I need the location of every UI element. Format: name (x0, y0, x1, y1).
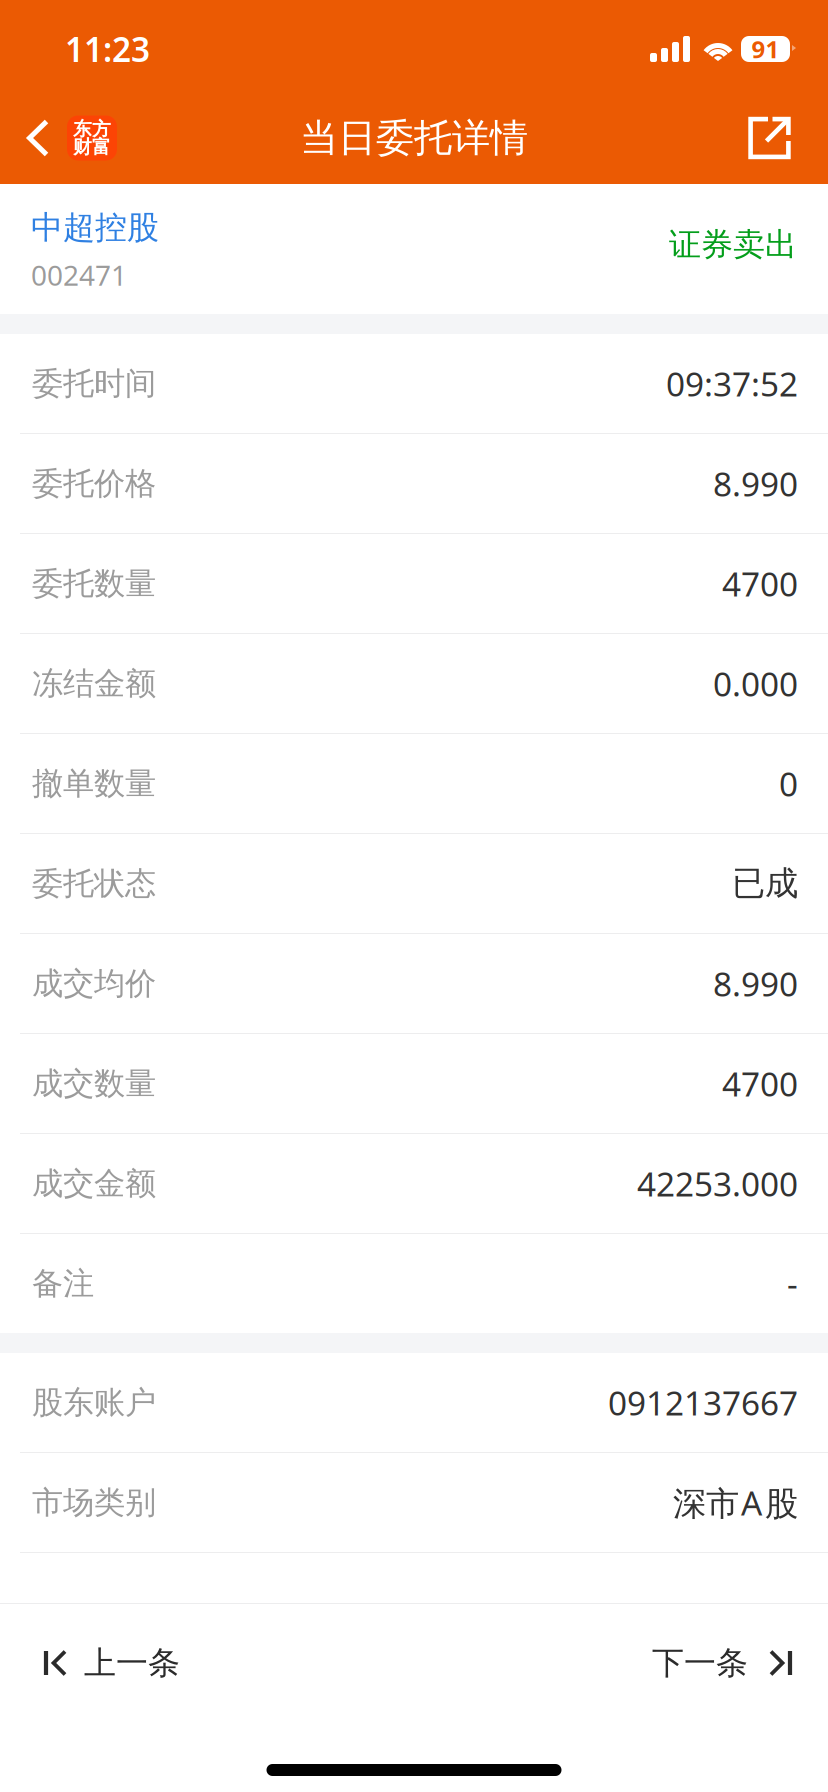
button[interactable]: 下一条 (622, 1608, 828, 1718)
staticText: 证券卖出 (669, 225, 797, 264)
staticText: 冻结金额 (32, 664, 156, 703)
staticText: 002471 (31, 256, 127, 293)
staticText: 上一条 (84, 1643, 180, 1683)
staticText: 中超控股 (31, 208, 159, 247)
staticText: 已成 (732, 863, 798, 904)
staticText: 0912137667 (608, 1380, 798, 1425)
staticText: 0.000 (713, 661, 798, 706)
staticText: 委托数量 (32, 564, 156, 603)
staticText: 股东账户 (32, 1383, 156, 1422)
staticText: 市场类别 (32, 1483, 156, 1522)
staticText: 下一条 (652, 1643, 748, 1683)
staticText: 11:23 (65, 27, 150, 71)
staticText: 0 (779, 761, 798, 806)
staticText: 成交均价 (32, 964, 156, 1003)
staticText: - (787, 1261, 798, 1306)
staticText: 42253.000 (637, 1161, 798, 1206)
staticText: 91 (751, 33, 779, 65)
staticText: 东方 (73, 117, 111, 140)
staticText: 成交数量 (32, 1064, 156, 1103)
staticText: 8.990 (713, 461, 798, 506)
staticText: 当日委托详情 (300, 114, 528, 162)
staticText: 委托时间 (32, 364, 156, 403)
staticText: 撤单数量 (32, 764, 156, 803)
staticText: 备注 (32, 1264, 94, 1303)
staticText: 财富 (73, 135, 111, 158)
staticText: 委托价格 (32, 464, 156, 503)
staticText: 09:37:52 (666, 361, 798, 406)
staticText: 委托状态 (32, 864, 156, 903)
button[interactable]: 上一条 (0, 1608, 210, 1718)
button[interactable]: 返回 (0, 92, 133, 184)
staticText: 4700 (722, 1061, 798, 1106)
staticText: 8.990 (713, 961, 798, 1006)
staticText: 成交金额 (32, 1164, 156, 1203)
staticText: 4700 (722, 561, 798, 606)
staticText: 深市 A 股 (673, 1480, 798, 1525)
button[interactable]: 分享 (728, 92, 828, 184)
